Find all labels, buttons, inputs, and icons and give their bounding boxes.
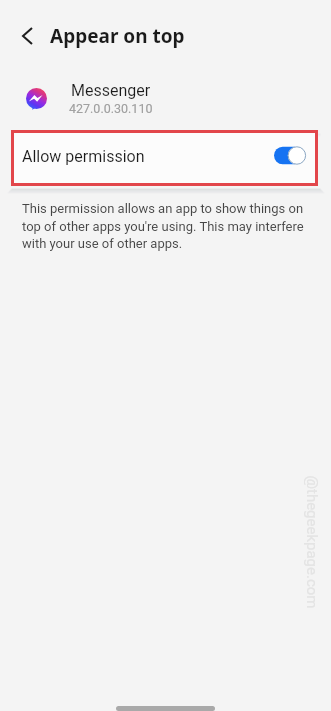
staticText: @thegeekpage.com: [302, 475, 320, 609]
button[interactable]: Allow permission: [11, 130, 318, 186]
staticText: Messenger: [71, 81, 151, 100]
button[interactable]: Back: [6, 15, 48, 57]
staticText: Allow permission: [22, 147, 145, 166]
button[interactable]: Allow permission toggle: [274, 146, 306, 165]
staticText: 427.0.0.30.110: [69, 101, 153, 116]
staticText: Appear on top: [50, 23, 185, 49]
staticText: This permission allows an app to show th…: [22, 201, 308, 251]
